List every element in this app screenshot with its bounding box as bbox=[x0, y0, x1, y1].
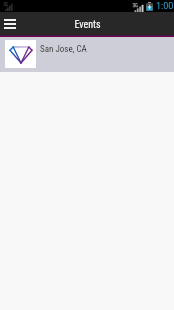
staticText: 1:00 bbox=[156, 1, 174, 12]
button[interactable]: San Jose, CA bbox=[0, 37, 174, 72]
staticText: San Jose, CA bbox=[40, 44, 87, 55]
button[interactable]: Open navigation drawer bbox=[0, 12, 20, 35]
staticText: Events bbox=[74, 19, 101, 31]
